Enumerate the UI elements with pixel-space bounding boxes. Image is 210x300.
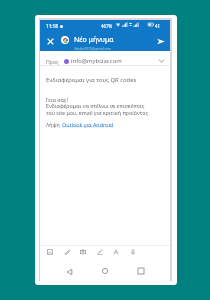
button[interactable]: Record audio [126,245,139,258]
button[interactable]: Attach file [60,245,73,258]
button[interactable]: Close [45,36,55,46]
button[interactable]: Send [156,36,166,46]
staticText: 11:18 [46,23,58,29]
button[interactable]: Expand recipients [156,56,166,66]
button[interactable]: Insert photo [43,245,56,258]
staticText: iliasbiz2020@gmail.com [74,46,112,50]
staticText: Ενδιαφέρομαι για τους QR codes [46,76,137,84]
staticText: Προς [46,58,59,65]
button[interactable]: Signature [93,245,106,258]
button[interactable]: Recents [134,264,147,277]
button[interactable]: Camera [76,245,89,258]
staticText: του site μου, email για κριτική προϊόντο… [46,109,148,116]
staticText: Λήψη [46,121,62,128]
staticText: Outlook για Android [62,121,114,128]
staticText: info@mybizar.com [71,57,122,65]
staticText: 41 [155,23,161,29]
staticText: Νέο μήνυμα [74,35,114,45]
staticText: Ενδιαφέρομαι να στέλνω σε επισκέπτες [46,102,145,109]
button[interactable]: Back [63,265,76,278]
staticText: Γεια σας! [46,96,68,103]
button[interactable]: Format text [109,245,122,258]
button[interactable]: Home [98,264,111,277]
staticText: 467% [101,23,113,29]
